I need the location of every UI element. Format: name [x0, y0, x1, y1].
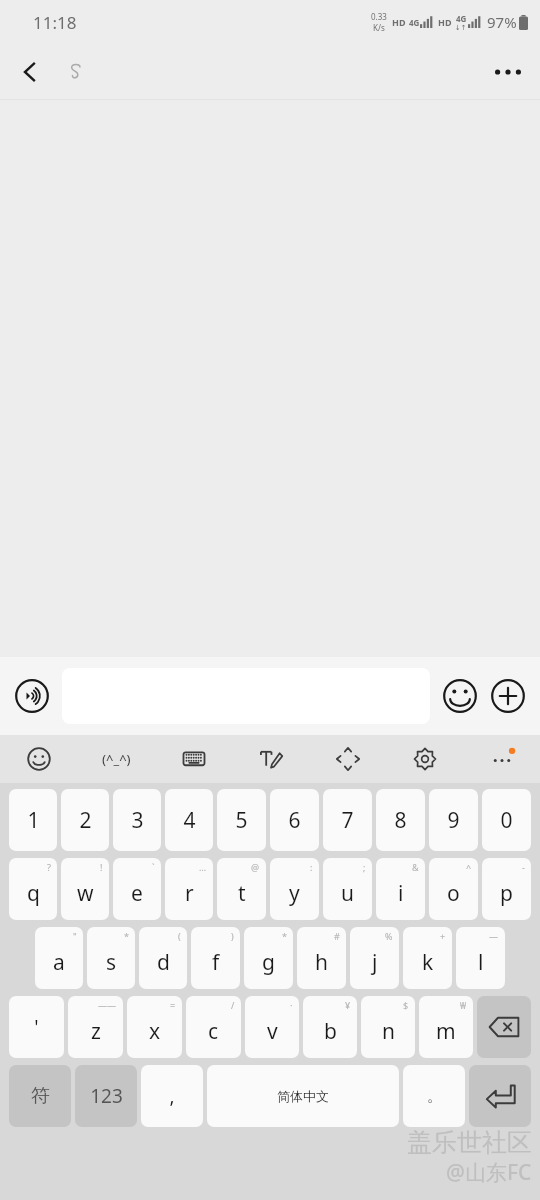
button[interactable]: 3 [113, 789, 161, 851]
button[interactable]: ) [191, 927, 240, 989]
button[interactable]: · [245, 996, 299, 1058]
button[interactable]: 2 [61, 789, 109, 851]
button[interactable]: ^ [429, 858, 478, 920]
staticText: i [398, 879, 404, 908]
staticText: a [53, 948, 65, 977]
staticText: HD [392, 16, 406, 28]
button[interactable]: ! [61, 858, 109, 920]
staticText: HD [438, 16, 452, 28]
staticText: * [282, 930, 287, 942]
button[interactable]: ? [9, 858, 57, 920]
staticText: e [131, 879, 143, 908]
staticText: ' [34, 1014, 39, 1040]
button[interactable]: Voice message [8, 672, 56, 720]
staticText: g [262, 948, 275, 977]
button[interactable]: 简体中文 [207, 1065, 399, 1127]
button[interactable]: 。 [403, 1065, 465, 1127]
staticText: & [412, 861, 419, 873]
button[interactable]: Keyboard settings [386, 735, 463, 783]
button[interactable]: Profile [58, 54, 94, 90]
staticText: 8 [394, 806, 407, 835]
button[interactable]: ` [113, 858, 161, 920]
button[interactable]: More options [484, 48, 532, 96]
button[interactable]: ₩ [419, 996, 473, 1058]
staticText: 。 [427, 1087, 442, 1106]
staticText: : [310, 861, 313, 873]
button[interactable]: # [297, 927, 346, 989]
button[interactable]: More [463, 735, 540, 783]
button[interactable]: * [87, 927, 135, 989]
button[interactable]: Resize keyboard [309, 735, 386, 783]
staticText: 4G [456, 13, 467, 24]
staticText: % [385, 930, 393, 942]
button[interactable]: , [141, 1065, 203, 1127]
staticText: 3 [131, 806, 144, 835]
staticText: 9 [447, 806, 460, 835]
staticText: @山东FC [446, 1158, 532, 1187]
button[interactable]: 9 [429, 789, 478, 851]
button[interactable]: ¥ [303, 996, 357, 1058]
button[interactable]: @ [217, 858, 266, 920]
staticText: # [334, 930, 340, 942]
button[interactable]: 7 [323, 789, 372, 851]
staticText: 1 [27, 806, 40, 835]
button[interactable]: 8 [376, 789, 425, 851]
button[interactable]: ; [323, 858, 372, 920]
button[interactable]: ' [9, 996, 64, 1058]
button[interactable]: Kaomoji [78, 735, 155, 783]
staticText: 盖乐世社区 [407, 1127, 532, 1158]
button[interactable]: + [403, 927, 452, 989]
staticText: 123 [90, 1083, 123, 1109]
staticText: p [500, 879, 513, 908]
staticText: 简体中文 [277, 1088, 329, 1104]
staticText: r [185, 879, 194, 908]
staticText: —— [98, 999, 117, 1011]
button[interactable]: 6 [270, 789, 319, 851]
button[interactable]: " [35, 927, 83, 989]
staticText: 7 [341, 806, 354, 835]
button[interactable]: 4 [165, 789, 213, 851]
button[interactable]: Stickers [0, 735, 78, 783]
button[interactable]: Add attachment [484, 672, 532, 720]
button[interactable]: 1 [9, 789, 57, 851]
button[interactable]: - [482, 858, 531, 920]
button[interactable]: % [350, 927, 399, 989]
staticText: ) [231, 930, 234, 942]
button[interactable]: 符 [9, 1065, 71, 1127]
button[interactable]: 123 [75, 1065, 137, 1127]
staticText: 5 [235, 806, 248, 835]
button[interactable]: = [127, 996, 182, 1058]
staticText: " [73, 930, 77, 942]
staticText: s [106, 948, 117, 977]
staticText: n [382, 1017, 395, 1046]
button[interactable]: 0 [482, 789, 531, 851]
button[interactable]: Backspace [477, 996, 531, 1058]
button[interactable]: $ [361, 996, 415, 1058]
button[interactable]: & [376, 858, 425, 920]
button[interactable]: : [270, 858, 319, 920]
staticText: d [157, 948, 170, 977]
staticText: u [341, 879, 354, 908]
button[interactable]: / [186, 996, 241, 1058]
button[interactable]: Back [6, 48, 54, 96]
staticText: ↓↑ [455, 24, 467, 32]
staticText: * [124, 930, 129, 942]
staticText: v [267, 1017, 278, 1046]
staticText: , [169, 1083, 175, 1109]
staticText: · [290, 999, 293, 1011]
button[interactable]: Keyboard layout [155, 735, 232, 783]
staticText: m [436, 1017, 456, 1046]
staticText: ! [100, 861, 103, 873]
button[interactable]: 5 [217, 789, 266, 851]
button[interactable]: ( [139, 927, 187, 989]
button[interactable]: * [244, 927, 293, 989]
staticText: - [522, 861, 525, 873]
button[interactable]: Enter [469, 1065, 531, 1127]
button[interactable]: —— [68, 996, 123, 1058]
staticText: — [489, 930, 499, 942]
button[interactable]: Handwriting [232, 735, 309, 783]
button[interactable]: Emoji [436, 672, 484, 720]
button[interactable]: — [456, 927, 505, 989]
button[interactable]: … [165, 858, 213, 920]
